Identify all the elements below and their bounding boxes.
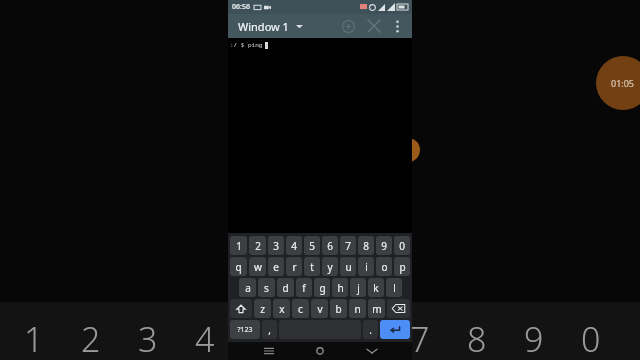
button[interactable]: Recent apps (258, 342, 280, 360)
button[interactable]: More options (387, 16, 407, 36)
staticText: :/ $ ping (230, 41, 263, 49)
button[interactable]: d (277, 278, 294, 297)
staticText: 1 (24, 316, 44, 360)
button[interactable]: z (254, 299, 271, 318)
button[interactable]: h (332, 278, 348, 297)
staticText: y (327, 260, 333, 274)
button[interactable]: Enter (380, 320, 410, 339)
staticText: ?123 (237, 325, 253, 335)
button[interactable]: Window 1 (236, 17, 305, 36)
staticText: v (317, 302, 323, 316)
staticText: 0 (581, 316, 601, 360)
button[interactable]: 3 (268, 236, 284, 255)
staticText: 9 (381, 239, 387, 253)
button[interactable]: s (258, 278, 275, 297)
staticText: m (372, 302, 382, 316)
staticText: 06:56 (232, 2, 250, 12)
staticText: 1 (236, 239, 242, 253)
staticText: b (335, 302, 342, 316)
staticText: 6 (327, 239, 333, 253)
button[interactable]: v (311, 299, 328, 318)
staticText: 0 (399, 239, 405, 253)
button[interactable]: f (296, 278, 312, 297)
button[interactable]: 8 (358, 236, 374, 255)
staticText: t (310, 260, 314, 274)
staticText: 01:05 (611, 77, 635, 89)
button[interactable]: u (340, 257, 356, 276)
button[interactable]: x (273, 299, 290, 318)
staticText: d (282, 281, 289, 295)
button[interactable]: p (394, 257, 410, 276)
button[interactable]: t (304, 257, 320, 276)
button[interactable]: :/ $ ping (228, 38, 412, 233)
button[interactable]: l (386, 278, 402, 297)
button[interactable]: r (286, 257, 302, 276)
staticText: 3 (138, 316, 158, 360)
button[interactable]: . (363, 320, 378, 339)
staticText: k (373, 281, 379, 295)
staticText: 2 (81, 316, 101, 360)
button[interactable]: 0 (394, 236, 410, 255)
staticText: f (302, 281, 306, 295)
button[interactable]: Hide keyboard (361, 342, 383, 360)
staticText: c (298, 302, 303, 316)
button[interactable]: i (358, 257, 374, 276)
staticText: Window 1 (238, 19, 289, 34)
button[interactable]: b (330, 299, 347, 318)
staticText: w (254, 260, 262, 274)
staticText: u (345, 260, 352, 274)
staticText: 4 (291, 239, 297, 253)
button[interactable]: ?123 (230, 320, 260, 339)
staticText: o (381, 260, 388, 274)
staticText: 7 (410, 316, 430, 360)
button[interactable]: q (230, 257, 247, 276)
button[interactable]: a (239, 278, 256, 297)
staticText: 9 (524, 316, 544, 360)
staticText: 7 (345, 239, 351, 253)
staticText: q (235, 260, 242, 274)
staticText: . (369, 323, 372, 337)
button[interactable]: n (349, 299, 366, 318)
button[interactable]: 7 (340, 236, 356, 255)
staticText: h (337, 281, 344, 295)
button[interactable]: 2 (249, 236, 266, 255)
button[interactable]: 9 (376, 236, 392, 255)
staticText: p (399, 260, 406, 274)
staticText: g (319, 281, 326, 295)
button[interactable]: 4 (286, 236, 302, 255)
staticText: r (292, 260, 297, 274)
button[interactable]: c (292, 299, 309, 318)
button[interactable]: New session (337, 15, 359, 37)
button[interactable]: j (350, 278, 366, 297)
staticText: n (354, 302, 361, 316)
staticText: 8 (467, 316, 487, 360)
staticText: a (245, 281, 251, 295)
button[interactable]: Shift (230, 299, 252, 318)
button[interactable]: Backspace (387, 299, 410, 318)
button[interactable]: w (249, 257, 266, 276)
button[interactable]: , (262, 320, 277, 339)
staticText: , (268, 323, 271, 337)
button[interactable]: o (376, 257, 392, 276)
button[interactable]: e (268, 257, 284, 276)
button[interactable]: m (368, 299, 385, 318)
staticText: 4 (195, 316, 215, 360)
button[interactable]: Close (363, 15, 385, 37)
staticText: j (357, 281, 360, 295)
staticText: x (279, 302, 285, 316)
button[interactable]: g (314, 278, 330, 297)
staticText: 5 (309, 239, 315, 253)
staticText: 2 (255, 239, 261, 253)
staticText: z (260, 302, 265, 316)
button[interactable]: 5 (304, 236, 320, 255)
button[interactable]: k (368, 278, 384, 297)
staticText: e (273, 260, 279, 274)
staticText: 8 (363, 239, 369, 253)
button[interactable]: y (322, 257, 338, 276)
button[interactable]: 6 (322, 236, 338, 255)
staticText: l (393, 281, 396, 295)
staticText: s (264, 281, 269, 295)
button[interactable]: Home (309, 342, 331, 360)
button[interactable]: 1 (230, 236, 247, 255)
